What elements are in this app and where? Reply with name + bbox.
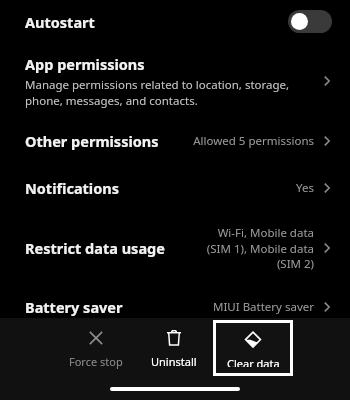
button[interactable]: Clear data (213, 320, 293, 376)
button[interactable]: Autostart (0, 0, 350, 45)
button[interactable]: App permissions (0, 45, 350, 118)
button[interactable]: Notifications (0, 164, 350, 212)
staticText: MIUI Battery saver (213, 299, 314, 315)
staticText: App permissions (25, 54, 145, 74)
staticText: Manage permissions related to location, … (25, 77, 290, 108)
staticText: Uninstall (151, 354, 197, 369)
staticText: Notifications (25, 178, 119, 198)
staticText: Yes (296, 180, 314, 196)
button[interactable]: Autostart toggle (288, 10, 332, 33)
staticText: Other permissions (25, 131, 159, 151)
button[interactable]: Uninstall (135, 321, 213, 375)
button[interactable]: Other permissions (0, 118, 350, 164)
button[interactable]: Restrict data usage (0, 212, 350, 284)
button[interactable]: Battery saver (0, 284, 350, 330)
staticText: Force stop (69, 354, 123, 369)
staticText: Wi-Fi, Mobile data (SIM 1), Mobile data … (192, 225, 314, 271)
staticText: Allowed 5 permissions (193, 133, 314, 149)
staticText: Battery saver (25, 297, 123, 317)
button[interactable]: Force stop (57, 321, 135, 375)
staticText: Restrict data usage (25, 238, 165, 258)
staticText: Clear data (227, 356, 280, 367)
staticText: Autostart (25, 12, 288, 32)
